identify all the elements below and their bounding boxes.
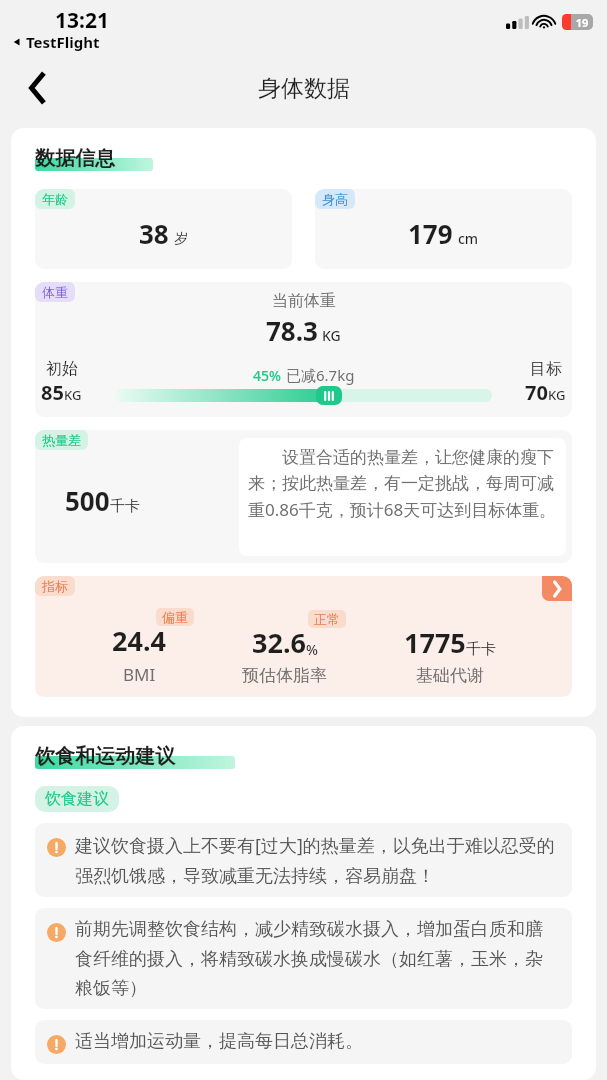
button[interactable]: 体重 xyxy=(35,282,572,417)
staticText: 千卡 xyxy=(110,497,140,516)
staticText: 85 xyxy=(41,379,64,406)
staticText: 建议饮食摄入上不要有[过大]的热量差，以免出于难以忍受的强烈饥饿感，导致减重无法… xyxy=(75,833,560,887)
staticText: 基础代谢 xyxy=(416,665,484,686)
staticText: 已减6.7kg xyxy=(286,365,355,385)
button[interactable]: 热量差 xyxy=(35,430,572,563)
staticText: TestFlight xyxy=(26,32,100,52)
staticText: 设置合适的热量差，让您健康的瘦下来；按此热量差，有一定挑战，每周可减重0.86千… xyxy=(248,445,557,521)
staticText: 32.6 xyxy=(252,624,306,661)
staticText: 身体数据 xyxy=(258,74,350,103)
staticText: 当前体重 xyxy=(272,291,336,311)
button[interactable]: 指标 xyxy=(35,576,572,697)
staticText: 指标 xyxy=(42,578,68,594)
staticText: % xyxy=(306,640,318,659)
staticText: 正常 xyxy=(314,611,340,627)
staticText: 适当增加运动量，提高每日总消耗。 xyxy=(75,1030,363,1053)
staticText: 500 xyxy=(65,483,110,518)
staticText: 岁 xyxy=(174,230,188,248)
button[interactable]: 适当增加运动量，提高每日总消耗。 xyxy=(35,1020,572,1064)
staticText: 38 xyxy=(139,216,169,251)
staticText: 年龄 xyxy=(42,191,68,207)
staticText: 初始 xyxy=(46,359,78,379)
staticText: 78.3 xyxy=(266,313,318,348)
staticText: 热量差 xyxy=(42,432,81,448)
staticText: 预估体脂率 xyxy=(242,665,327,686)
button[interactable]: Back xyxy=(14,65,60,111)
button[interactable]: More details xyxy=(542,576,572,601)
staticText: 70 xyxy=(525,379,548,406)
button[interactable]: 前期先调整饮食结构，减少精致碳水摄入，增加蛋白质和膳食纤维的摄入，将精致碳水换成… xyxy=(35,908,572,1009)
staticText: 目标 xyxy=(530,359,562,379)
staticText: 19 xyxy=(571,15,593,30)
staticText: BMI xyxy=(123,663,156,686)
staticText: 偏重 xyxy=(162,609,188,625)
button[interactable]: 身高 xyxy=(315,189,572,269)
staticText: KG xyxy=(322,326,341,345)
button[interactable]: 年龄 xyxy=(35,189,292,269)
staticText: 179 xyxy=(408,216,453,251)
staticText: 饮食和运动建议 xyxy=(35,744,175,769)
button[interactable]: 建议饮食摄入上不要有[过大]的热量差，以免出于难以忍受的强烈饥饿感，导致减重无法… xyxy=(35,823,572,897)
staticText: KG xyxy=(548,386,566,404)
staticText: 千卡 xyxy=(466,640,496,659)
staticText: 13:21 xyxy=(55,6,109,35)
staticText: 前期先调整饮食结构，减少精致碳水摄入，增加蛋白质和膳食纤维的摄入，将精致碳水换成… xyxy=(75,918,560,999)
staticText: KG xyxy=(64,386,82,404)
staticText: 饮食建议 xyxy=(45,789,109,809)
staticText: 45% xyxy=(253,366,281,385)
staticText: 1775 xyxy=(404,624,466,661)
staticText: cm xyxy=(458,229,479,248)
staticText: 数据信息 xyxy=(35,146,115,171)
staticText: 体重 xyxy=(42,284,68,300)
staticText: 身高 xyxy=(322,191,348,207)
staticText: 24.4 xyxy=(112,622,166,659)
